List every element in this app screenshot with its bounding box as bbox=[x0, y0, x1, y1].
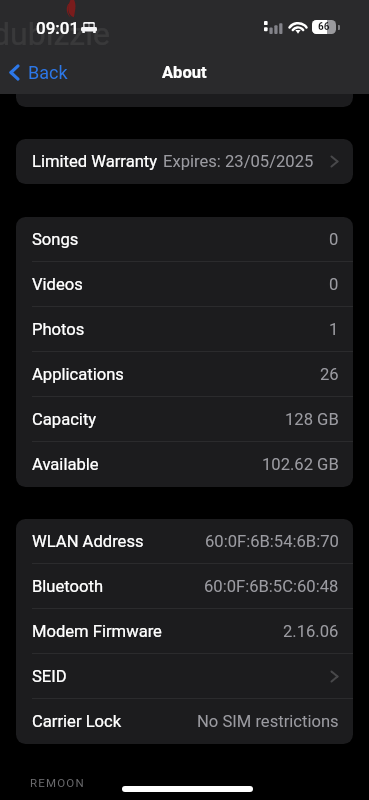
staticText: REMOON bbox=[30, 776, 85, 789]
staticText: Songs bbox=[32, 230, 79, 249]
staticText: Limited Warranty bbox=[32, 152, 158, 171]
button[interactable]: Photos bbox=[16, 307, 353, 351]
staticText: 60:0F:6B:54:6B:70 bbox=[205, 532, 339, 551]
button[interactable]: Videos bbox=[16, 262, 353, 306]
staticText: Photos bbox=[32, 320, 85, 339]
staticText: Expires: 23/05/2025 bbox=[163, 152, 314, 171]
staticText: 102.62 GB bbox=[262, 455, 339, 474]
staticText: 0 bbox=[329, 230, 339, 249]
staticText: Available bbox=[32, 455, 99, 474]
button[interactable]: WLAN Address bbox=[16, 519, 353, 563]
staticText: About bbox=[162, 63, 207, 82]
button[interactable]: Carrier Lock bbox=[16, 699, 353, 744]
staticText: Videos bbox=[32, 275, 83, 294]
staticText: Capacity bbox=[32, 410, 97, 429]
staticText: Modem Firmware bbox=[32, 622, 162, 641]
staticText: 0 bbox=[329, 275, 339, 294]
staticText: No SIM restrictions bbox=[197, 712, 339, 731]
staticText: Applications bbox=[32, 365, 124, 384]
button[interactable]: Limited Warranty bbox=[16, 139, 353, 184]
staticText: 09:01 bbox=[36, 18, 80, 38]
staticText: Bluetooth bbox=[32, 577, 104, 596]
staticText: 60:0F:6B:5C:60:48 bbox=[204, 577, 339, 596]
staticText: Carrier Lock bbox=[32, 712, 122, 731]
button[interactable]: Available bbox=[16, 442, 353, 487]
button[interactable]: SEID bbox=[16, 654, 353, 698]
button[interactable]: Capacity bbox=[16, 397, 353, 441]
staticText: WLAN Address bbox=[32, 532, 144, 551]
staticText: 66 bbox=[318, 21, 330, 33]
button[interactable]: Songs bbox=[16, 217, 353, 261]
staticText: 128 GB bbox=[285, 410, 339, 429]
button[interactable]: Applications bbox=[16, 352, 353, 396]
staticText: dubizzle bbox=[0, 15, 110, 53]
staticText: 2.16.06 bbox=[283, 622, 339, 641]
button[interactable]: Back bbox=[0, 56, 78, 89]
staticText: 1 bbox=[329, 320, 339, 339]
staticText: Back bbox=[28, 62, 68, 83]
button[interactable]: Modem Firmware bbox=[16, 609, 353, 653]
staticText: 26 bbox=[320, 365, 339, 384]
staticText: SEID bbox=[32, 667, 67, 686]
button[interactable]: Bluetooth bbox=[16, 564, 353, 608]
